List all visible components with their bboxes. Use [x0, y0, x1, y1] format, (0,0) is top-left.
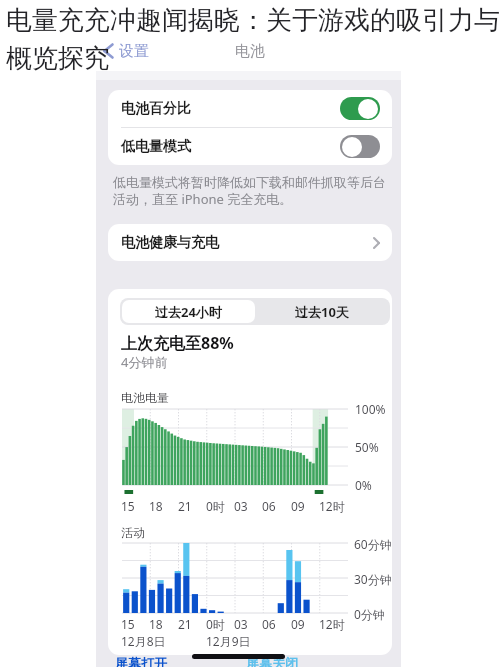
staticText: 06 — [262, 616, 276, 632]
staticText: 15 — [121, 616, 135, 632]
staticText: 12月9日 — [206, 633, 251, 649]
staticText: 21 — [178, 498, 192, 514]
staticText: 电池 — [235, 42, 265, 61]
staticText: 屏幕打开 — [115, 655, 167, 667]
staticText: 50% — [355, 439, 379, 455]
staticText: 电池百分比 — [121, 100, 191, 118]
staticText: 03 — [234, 616, 248, 632]
other: 返回 设置 — [103, 43, 114, 59]
staticText: 30分钟 — [354, 571, 392, 587]
staticText: 低电量模式将暂时降低如下载和邮件抓取等后台 活动，直至 iPhone 完全充电。 — [113, 174, 386, 207]
staticText: 设置 — [119, 42, 149, 60]
button[interactable]: 低电量模式 — [108, 128, 392, 165]
button[interactable]: 过去10天 — [255, 300, 388, 323]
staticText: 0时 — [206, 616, 225, 632]
staticText: 09 — [291, 616, 305, 632]
staticText: 上次充电至88% — [121, 332, 234, 354]
staticText: 电池电量 — [121, 390, 169, 405]
staticText: 0% — [355, 477, 372, 493]
button[interactable]: 电池百分比 — [108, 90, 392, 127]
staticText: 12时 — [319, 616, 345, 632]
staticText: 低电量模式 — [121, 138, 191, 156]
staticText: 03 — [234, 498, 248, 514]
staticText: 活动 — [121, 525, 145, 540]
button[interactable]: 过去24小时 — [122, 300, 255, 323]
button[interactable]: 返回 设置 — [103, 42, 149, 60]
staticText: 18 — [149, 498, 163, 514]
staticText: 电池健康与充电 — [121, 234, 219, 252]
staticText: 12时 — [319, 498, 345, 514]
staticText: 60分钟 — [354, 536, 392, 552]
staticText: 06 — [262, 498, 276, 514]
staticText: 0时 — [206, 498, 225, 514]
staticText: 12月8日 — [121, 633, 166, 649]
staticText: 18 — [149, 616, 163, 632]
staticText: 0分钟 — [354, 606, 385, 622]
staticText: 屏幕关闭 — [246, 655, 298, 667]
staticText: 09 — [291, 498, 305, 514]
staticText: 15 — [121, 498, 135, 514]
staticText: 100% — [355, 401, 386, 417]
staticText: 过去10天 — [295, 303, 349, 321]
staticText: 4分钟前 — [121, 353, 168, 371]
staticText: 电量充充冲趣闻揭晓：关于游戏的吸引力与概览探究 — [6, 4, 500, 75]
staticText: 21 — [178, 616, 192, 632]
button[interactable]: 电池健康与充电 — [108, 224, 392, 261]
staticText: 过去24小时 — [155, 303, 222, 321]
